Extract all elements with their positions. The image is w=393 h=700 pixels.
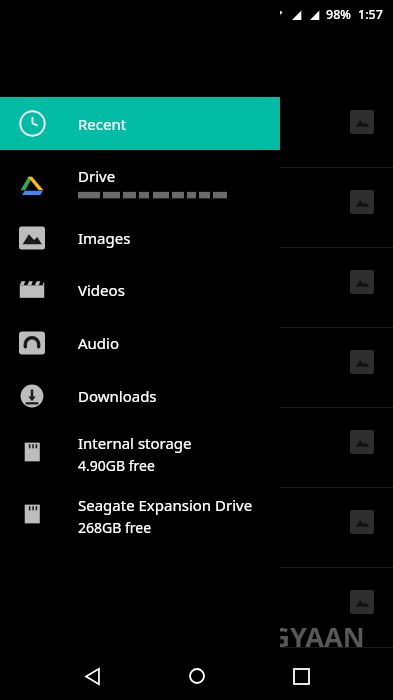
- button[interactable]: IMG_20170404.png: [0, 408, 393, 488]
- staticText: 1:57: [358, 6, 383, 23]
- button[interactable]: IMG_20170402.png: [0, 248, 393, 328]
- button[interactable]: Drive: [0, 156, 280, 214]
- staticText: IMG_20170401.png: [30, 190, 158, 209]
- button[interactable]: Images: [0, 212, 280, 264]
- staticText: Drive: [78, 166, 116, 186]
- button[interactable]: Audio: [0, 317, 280, 369]
- button[interactable]: Recent apps: [277, 652, 325, 700]
- button[interactable]: Seagate Expansion Drive: [0, 485, 280, 543]
- staticText: BIGYAAN: [242, 618, 365, 655]
- staticText: Recent: [78, 114, 127, 134]
- button[interactable]: Internal storage: [0, 423, 280, 481]
- button[interactable]: IMG_20170401.png: [0, 168, 393, 248]
- staticText: IMG_20170405.png: [30, 510, 158, 529]
- button[interactable]: Videos: [0, 264, 280, 316]
- button[interactable]: IMG_20170409.png: [0, 88, 393, 168]
- staticText: Audio: [78, 333, 120, 353]
- button[interactable]: Downloads: [0, 370, 280, 422]
- staticText: IMG_20170409.png: [30, 110, 158, 129]
- staticText: 98%: [326, 6, 351, 23]
- staticText: Videos: [78, 280, 125, 300]
- staticText: IMG_20170402.png: [30, 270, 158, 289]
- staticText: 268GB free: [78, 518, 152, 537]
- staticText: IMG_20170404.png: [30, 430, 158, 449]
- staticText: 4.90GB free: [78, 456, 155, 475]
- staticText: Images: [78, 228, 131, 248]
- staticText: IMG_20170403.png: [30, 350, 158, 369]
- button[interactable]: IMG_20170406.png: [0, 568, 393, 648]
- button[interactable]: Recent: [0, 97, 280, 150]
- button[interactable]: Home: [173, 652, 221, 700]
- staticText: Seagate Expansion Drive: [78, 495, 253, 515]
- button[interactable]: Back: [68, 652, 116, 700]
- staticText: Downloads: [78, 386, 157, 406]
- button[interactable]: IMG_20170405.png: [0, 488, 393, 568]
- button[interactable]: IMG_20170403.png: [0, 328, 393, 408]
- staticText: Internal storage: [78, 433, 192, 453]
